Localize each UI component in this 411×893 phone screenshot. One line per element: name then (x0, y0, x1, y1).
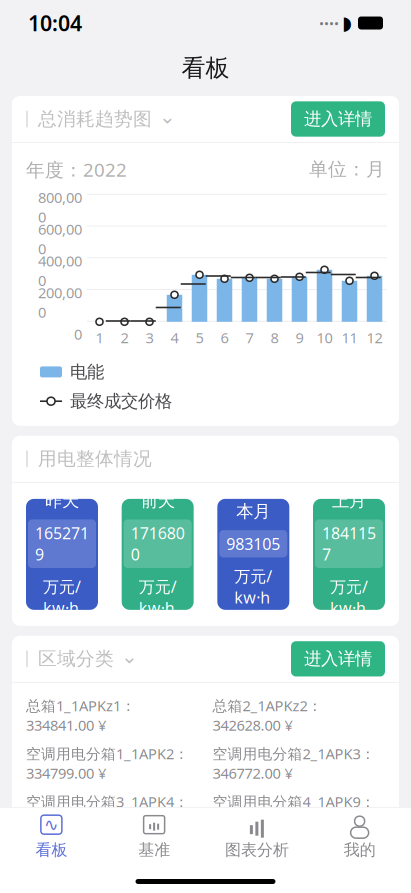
staticText: 总箱2_1APKz2：342628.00 ¥ (212, 696, 322, 735)
staticText: 上月 (332, 490, 366, 511)
button[interactable]: 我的 (308, 807, 411, 860)
staticText: 区域分类 (38, 647, 114, 670)
button[interactable]: ∿ (0, 807, 103, 860)
staticText: 最终成交价格 (70, 391, 172, 412)
button[interactable]: 图表分析 (205, 807, 308, 860)
staticText: 12 (366, 328, 382, 347)
staticText: 昨天 (45, 490, 79, 511)
staticText: 看板 (181, 53, 229, 83)
staticText: 前天 (141, 490, 175, 511)
staticText: 2 (120, 328, 128, 347)
staticText: 单位：月 (309, 158, 385, 181)
staticText: 200,000 (38, 283, 82, 322)
staticText: 11 (341, 328, 357, 347)
staticText: 万元/kw·h (43, 576, 81, 618)
staticText: 10 (316, 328, 332, 347)
staticText: 1652719 (35, 522, 89, 565)
staticText: 总箱1_1APKz1：334841.00 ¥ (26, 696, 136, 735)
staticText: 进入详情 (304, 648, 372, 669)
button[interactable]: 进入详情 (291, 641, 385, 676)
staticText: 空调用电分箱3_1APK4： 321077.00 ¥ (26, 792, 189, 850)
staticText: 400,000 (38, 251, 82, 290)
staticText: ◗ (342, 12, 352, 34)
staticText: 1716800 (131, 522, 185, 565)
staticText: 1 (95, 328, 103, 347)
staticText: 本月 (236, 501, 270, 522)
staticText: 1841157 (322, 522, 376, 565)
staticText: 800,000 (38, 188, 82, 227)
staticText: 3 (145, 328, 153, 347)
staticText: 6 (220, 328, 228, 347)
staticText: 0 (74, 324, 82, 344)
staticText: 空调用电分箱5_1APK8： 344493.00 ¥ (26, 859, 189, 893)
staticText: 空调用电分箱1_1APK2： 334799.00 ¥ (26, 744, 189, 783)
staticText: •••• (319, 14, 342, 32)
staticText: 5 (195, 328, 203, 347)
staticText: 8 (270, 328, 278, 347)
staticText: 4 (170, 328, 178, 347)
staticText: 7 (245, 328, 253, 347)
staticText: 万元/kw·h (330, 576, 368, 618)
button[interactable]: 基准 (103, 807, 206, 860)
staticText: ⌄ (121, 645, 138, 668)
staticText: 600,000 (38, 219, 82, 258)
staticText: 年度：2022 (26, 157, 127, 182)
staticText: 983105 (226, 533, 280, 554)
staticText: 万元/kw·h (234, 565, 272, 608)
staticText: ⌄ (159, 105, 176, 128)
staticText: 基准 (138, 840, 170, 860)
staticText: ∿ (44, 815, 59, 834)
staticText: 进入详情 (304, 108, 372, 130)
staticText: 看板 (35, 840, 67, 860)
staticText: 总消耗趋势图 (38, 107, 152, 130)
button[interactable]: 进入详情 (291, 101, 385, 137)
staticText: 10:04 (28, 9, 82, 37)
staticText: 图表分析 (225, 840, 289, 860)
staticText: 电能 (70, 361, 104, 383)
staticText: 空调用电分箱4_1APK9： 346698.00 ¥ (212, 792, 375, 831)
staticText: 空调用电分箱2_1APK3： 346772.00 ¥ (212, 744, 375, 783)
staticText: 用电整体情况 (38, 447, 152, 470)
staticText: 9 (295, 328, 303, 347)
staticText: 万元/kw·h (139, 576, 177, 618)
staticText: 我的 (344, 840, 376, 860)
